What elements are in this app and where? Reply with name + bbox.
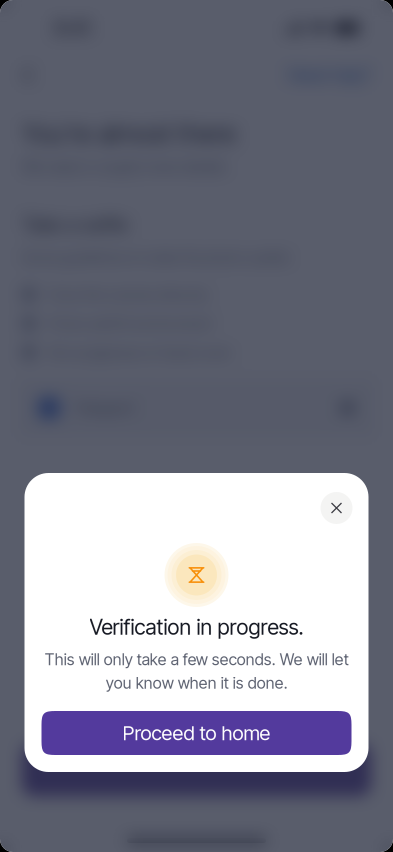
button[interactable]: Proceed to home xyxy=(41,711,351,755)
button[interactable]: Close xyxy=(320,492,352,524)
staticText: You're almost there xyxy=(22,118,236,149)
staticText: This will only take a few seconds. We wi… xyxy=(44,650,348,692)
staticText: Proceed to home xyxy=(122,721,270,745)
staticText: Verification in progress. xyxy=(89,614,303,640)
